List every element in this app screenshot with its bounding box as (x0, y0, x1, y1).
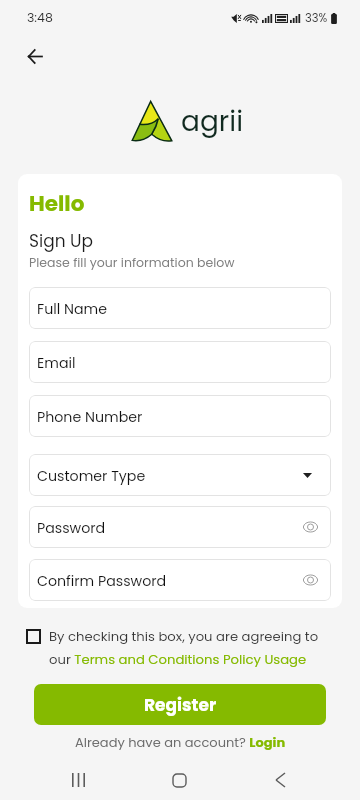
button[interactable]: Back (17, 38, 53, 74)
staticText: Email (37, 353, 76, 373)
staticText: Hello (29, 188, 85, 218)
staticText: Phone Number (37, 407, 143, 427)
button[interactable]: Phone Number (29, 395, 331, 437)
staticText: 3:48 (27, 9, 53, 26)
button[interactable]: Recents (54, 760, 102, 800)
button[interactable]: Home (155, 760, 203, 800)
button[interactable]: Email (29, 341, 331, 383)
button[interactable]: Already have an account? Login (75, 733, 286, 751)
staticText: Register (144, 693, 217, 717)
button[interactable]: Password (29, 506, 331, 548)
staticText: By checking this box, you are agreeing t… (49, 627, 325, 669)
button[interactable]: Register (34, 684, 326, 725)
button[interactable]: Full Name (29, 287, 331, 329)
staticText: Password (37, 518, 106, 538)
staticText: Please fill your information below (29, 254, 235, 271)
button[interactable]: Confirm Password (29, 559, 331, 601)
staticText: agrii (181, 102, 244, 141)
staticText: Already have an account? Login (75, 733, 286, 751)
staticText: Confirm Password (37, 571, 167, 591)
button[interactable]: Accept terms checkbox (26, 629, 41, 644)
staticText: Full Name (37, 299, 107, 319)
button[interactable]: Back (256, 760, 304, 800)
staticText: 33% (305, 10, 328, 26)
staticText: Sign Up (29, 229, 94, 253)
button[interactable]: Customer Type (29, 454, 331, 496)
staticText: Customer Type (37, 466, 146, 486)
